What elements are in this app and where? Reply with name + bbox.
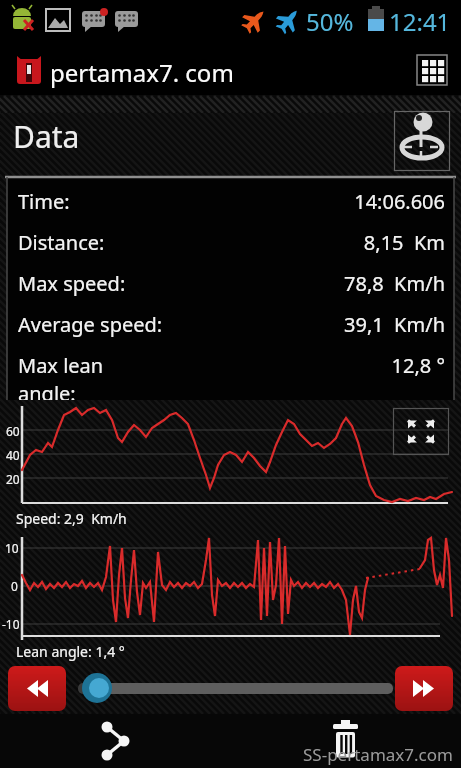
staticText: Speed: 2,9 Km/h [16, 509, 127, 528]
staticText: Data [13, 116, 80, 157]
button[interactable] [413, 51, 451, 89]
staticText: 60 [6, 423, 20, 439]
button[interactable] [93, 716, 139, 764]
staticText: 40 [6, 447, 20, 463]
button[interactable] [393, 408, 449, 455]
staticText: Distance: [18, 229, 105, 256]
staticText: 14:06.606 [198, 188, 445, 215]
staticText: Max speed: [18, 270, 126, 297]
button[interactable] [394, 111, 450, 171]
staticText: 0 [11, 578, 18, 594]
staticText: 39,1 Km/h [198, 311, 445, 338]
button[interactable] [72, 668, 392, 708]
staticText: SS-pertamax7.com [303, 743, 453, 766]
staticText: Average speed: [18, 311, 163, 338]
staticText: angle: [18, 380, 76, 400]
staticText: 20 [6, 471, 20, 487]
staticText: 78,8 Km/h [198, 270, 445, 297]
staticText: 12:41 [389, 5, 451, 38]
staticText: Time: [18, 188, 70, 215]
staticText: -10 [2, 616, 20, 632]
staticText: Max lean [18, 352, 104, 379]
staticText: Lean angle: 1,4 ° [16, 642, 125, 661]
staticText: 10 [5, 540, 19, 556]
button[interactable] [323, 714, 369, 764]
staticText: 50% [306, 5, 354, 38]
staticText: 8,15 Km [198, 229, 445, 256]
button[interactable] [8, 666, 66, 711]
staticText: 12,8 ° [198, 352, 445, 379]
staticText: pertamax7. com [50, 56, 234, 89]
button[interactable] [395, 666, 453, 711]
